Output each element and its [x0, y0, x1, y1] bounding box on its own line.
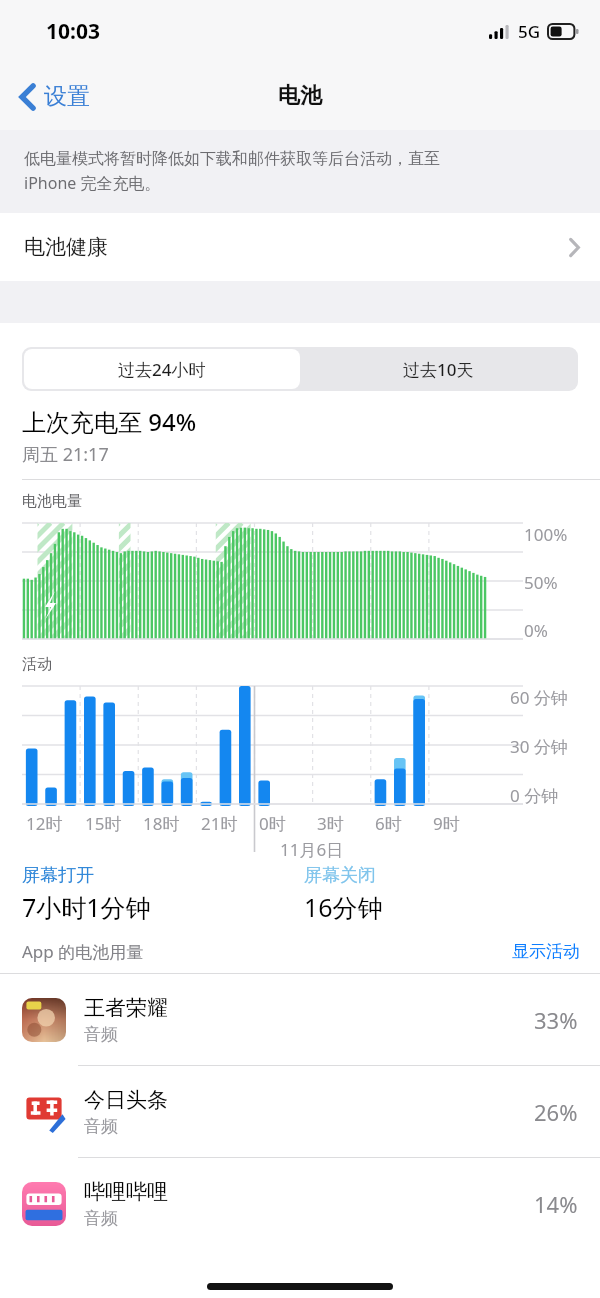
- button[interactable]: 今日头条: [0, 1066, 600, 1157]
- staticText: 0时: [259, 812, 286, 835]
- staticText: 0%: [524, 619, 548, 639]
- staticText: 显示活动: [512, 941, 580, 962]
- staticText: 3时: [317, 812, 344, 835]
- staticText: 屏幕打开: [22, 864, 94, 887]
- staticText: 王者荣耀: [84, 995, 168, 1021]
- staticText: 11月6日: [280, 838, 344, 858]
- staticText: 100%: [524, 523, 568, 543]
- staticText: 18时: [143, 812, 180, 835]
- staticText: 26%: [534, 1097, 578, 1127]
- staticText: 电池电量: [22, 492, 82, 511]
- staticText: 50%: [524, 571, 558, 591]
- staticText: 过去10天: [403, 358, 474, 381]
- staticText: 0 分钟: [510, 784, 559, 804]
- staticText: 14%: [534, 1189, 578, 1219]
- staticText: 哔哩哔哩: [84, 1179, 168, 1205]
- staticText: 6时: [375, 812, 402, 835]
- staticText: 16分钟: [304, 890, 383, 924]
- staticText: 9时: [433, 812, 460, 835]
- staticText: 音频: [84, 1116, 118, 1137]
- staticText: 33%: [534, 1005, 578, 1035]
- staticText: 30 分钟: [510, 735, 568, 755]
- staticText: 21时: [201, 812, 238, 835]
- button[interactable]: 电池健康: [0, 213, 600, 281]
- staticText: 屏幕关闭: [304, 864, 376, 887]
- staticText: 电池健康: [24, 234, 108, 260]
- staticText: 周五 21:17: [22, 442, 109, 467]
- staticText: 5G: [518, 20, 541, 43]
- staticText: 过去24小时: [118, 358, 206, 381]
- button[interactable]: 显示活动: [512, 941, 580, 962]
- staticText: 音频: [84, 1024, 118, 1045]
- staticText: 电池: [278, 82, 322, 110]
- staticText: 12时: [26, 812, 63, 835]
- staticText: 今日头条: [84, 1087, 168, 1113]
- button[interactable]: 王者荣耀: [0, 974, 600, 1065]
- button[interactable]: 过去10天: [300, 349, 576, 389]
- button[interactable]: 设置: [16, 76, 94, 117]
- staticText: 60 分钟: [510, 686, 568, 706]
- staticText: App 的电池用量: [22, 940, 144, 963]
- staticText: 活动: [22, 655, 52, 674]
- staticText: 15时: [85, 812, 122, 835]
- staticText: 7小时1分钟: [22, 890, 151, 924]
- staticText: 10:03: [46, 17, 100, 46]
- button[interactable]: 哔哩哔哩: [0, 1158, 600, 1249]
- staticText: 音频: [84, 1208, 118, 1229]
- button[interactable]: 过去24小时: [24, 349, 300, 389]
- staticText: 设置: [44, 82, 90, 111]
- staticText: 低电量模式将暂时降低如下载和邮件获取等后台活动，直至 iPhone 完全充电。: [24, 149, 440, 194]
- staticText: 上次充电至 94%: [22, 405, 197, 438]
